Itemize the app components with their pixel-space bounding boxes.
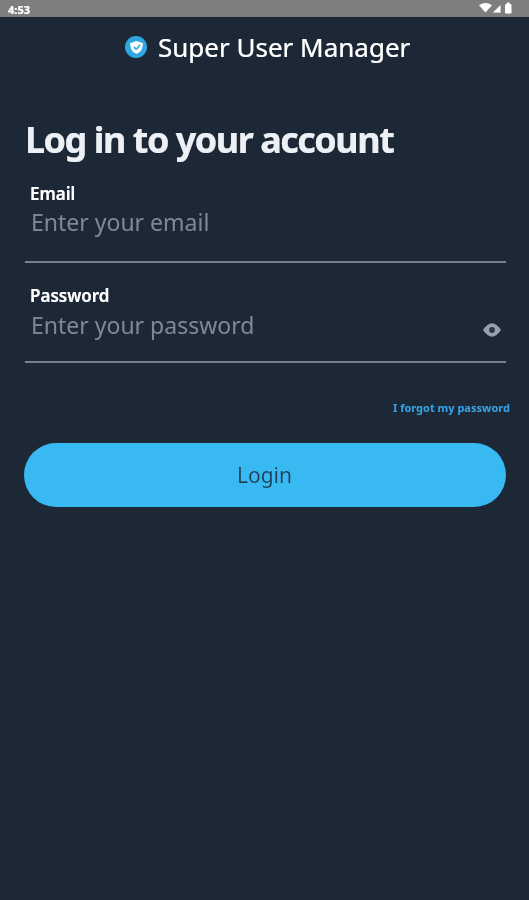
staticText: Enter your password bbox=[31, 309, 255, 340]
button[interactable]: I forgot my password bbox=[393, 400, 510, 415]
staticText: 4:53 bbox=[8, 2, 30, 17]
staticText: Log in to your account bbox=[25, 115, 394, 164]
staticText: Enter your email bbox=[31, 206, 210, 237]
staticText: Super User Manager bbox=[158, 29, 411, 64]
staticText: Email bbox=[30, 182, 76, 205]
staticText: Login bbox=[237, 461, 293, 490]
button[interactable]: Enter your password bbox=[25, 308, 506, 363]
button[interactable]: Enter your email bbox=[25, 206, 506, 263]
button[interactable]: Login bbox=[24, 443, 506, 507]
staticText: Password bbox=[30, 284, 110, 307]
